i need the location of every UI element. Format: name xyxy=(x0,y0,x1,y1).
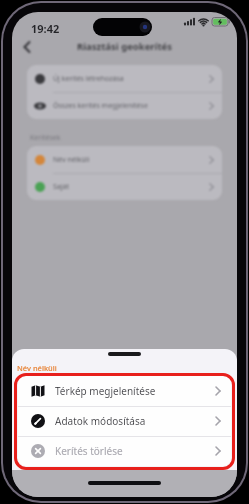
button[interactable]: Kerítés törlése xyxy=(18,436,231,466)
button[interactable]: Saját xyxy=(27,173,222,200)
button[interactable]: Adatok módosítása xyxy=(18,406,231,436)
button[interactable]: Új kerítés létrehozása xyxy=(27,65,222,92)
staticText: Riasztási geokerítés xyxy=(77,40,172,53)
staticText: Adatok módosítása xyxy=(55,414,146,428)
staticText: Név nélküli xyxy=(17,363,57,373)
staticText: Kerítés törlése xyxy=(55,444,123,458)
button[interactable]: Összes kerítés megjelenítése xyxy=(27,92,222,119)
staticText: Kerítések xyxy=(30,133,61,143)
staticText: Név nélküli xyxy=(53,155,90,165)
staticText: 19:42 xyxy=(31,21,60,36)
button[interactable]: Térkép megjelenítése xyxy=(18,376,231,406)
staticText: Térkép megjelenítése xyxy=(55,384,156,398)
staticText: Összes kerítés megjelenítése xyxy=(53,101,148,111)
button[interactable]: Név nélküli xyxy=(27,146,222,173)
staticText: Saját xyxy=(53,182,70,192)
staticText: Új kerítés létrehozása xyxy=(53,74,124,84)
